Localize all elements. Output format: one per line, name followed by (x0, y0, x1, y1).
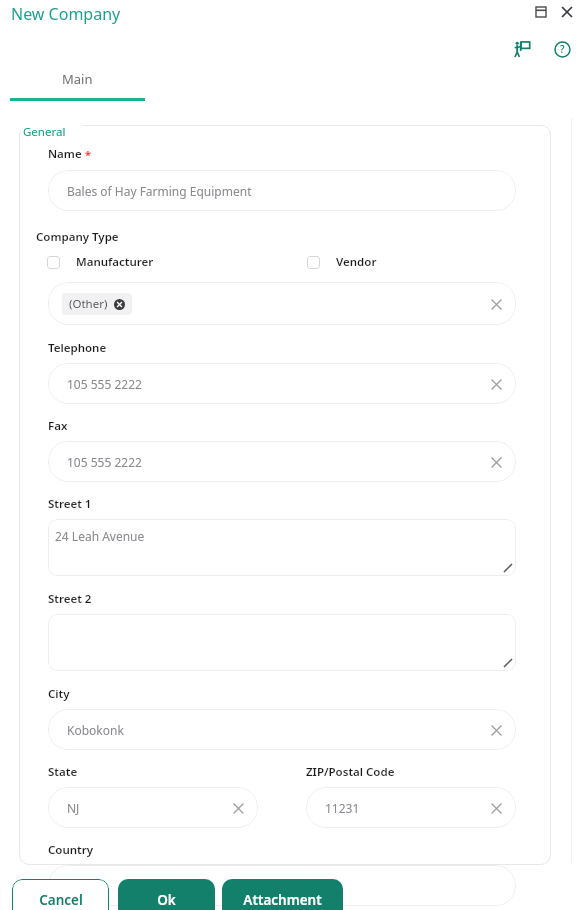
staticText: 105 555 2222 (67, 376, 487, 392)
staticText: City (48, 686, 70, 702)
button[interactable]: Clear (487, 799, 505, 817)
button[interactable]: Clear (487, 375, 505, 393)
staticText: 105 555 2222 (67, 454, 487, 470)
staticText: Cancel (39, 891, 83, 909)
staticText: Kobokonk (67, 722, 487, 738)
button[interactable]: 105 555 2222 (48, 441, 516, 482)
staticText: Attachment (243, 891, 322, 909)
button[interactable]: Clear (487, 453, 505, 471)
staticText: NJ (67, 800, 229, 816)
button[interactable]: Kobokonk (48, 709, 516, 750)
button[interactable]: Manufacturer (47, 251, 307, 273)
staticText: Main (62, 70, 93, 88)
staticText (67, 878, 505, 894)
button[interactable]: NJ (48, 787, 258, 828)
button[interactable]: 24 Leah Avenue (48, 519, 516, 576)
staticText: General (23, 124, 66, 140)
staticText: Manufacturer (76, 254, 154, 270)
button[interactable]: (Other) (48, 282, 516, 325)
staticText: Ok (157, 891, 176, 909)
button[interactable]: Assign (508, 35, 536, 63)
button[interactable]: Bales of Hay Farming Equipment (48, 170, 516, 211)
staticText: 11231 (325, 800, 487, 816)
button[interactable]: Vendor (307, 251, 377, 273)
button[interactable]: Help (548, 35, 576, 63)
button[interactable]: Clear (229, 799, 247, 817)
button[interactable]: Ok (118, 879, 215, 910)
button[interactable] (48, 865, 516, 906)
button[interactable] (48, 614, 516, 671)
button[interactable]: Clear (487, 295, 505, 313)
staticText: New Company (11, 3, 121, 25)
staticText: (Other) (69, 296, 108, 312)
staticText: Telephone (48, 340, 107, 356)
button[interactable]: Restore (531, 2, 551, 22)
staticText: Street 2 (48, 591, 92, 607)
staticText: Vendor (336, 254, 377, 270)
button[interactable]: Clear (487, 721, 505, 739)
staticText: ? (560, 42, 565, 56)
staticText: Name (48, 146, 82, 162)
button[interactable]: Close (557, 2, 577, 22)
button[interactable]: 105 555 2222 (48, 363, 516, 404)
staticText: * (85, 147, 91, 162)
staticText: Country (48, 842, 94, 858)
button[interactable]: Main (10, 64, 145, 101)
staticText: Bales of Hay Farming Equipment (67, 183, 505, 199)
staticText: Company Type (36, 229, 119, 245)
staticText: ZIP/Postal Code (306, 764, 395, 780)
staticText: State (48, 764, 78, 780)
staticText: Street 1 (48, 496, 92, 512)
button[interactable]: Attachment (222, 879, 343, 910)
staticText: 24 Leah Avenue (55, 528, 145, 544)
button[interactable]: 11231 (306, 787, 516, 828)
button[interactable]: Cancel (12, 879, 109, 910)
button[interactable]: (Other) (62, 293, 132, 315)
staticText: Fax (48, 418, 68, 434)
